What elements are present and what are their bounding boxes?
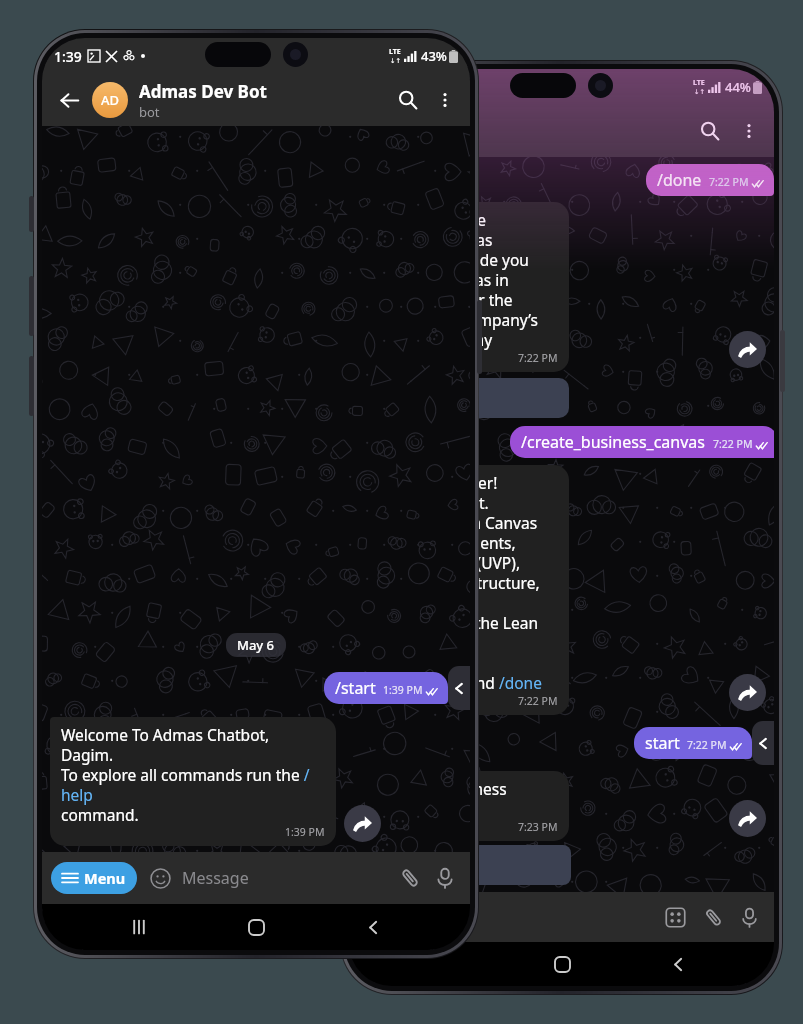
staticText: dmas Dev Bot	[349, 111, 466, 134]
staticText: bot	[139, 103, 160, 121]
staticText: 7:22 PM	[687, 738, 727, 752]
button[interactable]: Home	[236, 907, 276, 947]
button[interactable]: Recents	[425, 944, 465, 984]
button[interactable]: Forward	[729, 800, 766, 837]
staticText: Cancel	[361, 388, 411, 409]
button[interactable]: Voice message	[429, 862, 461, 894]
staticText: 7:22 PM	[518, 351, 558, 365]
button[interactable]: Back	[658, 944, 698, 984]
staticText: ↓↑	[694, 88, 705, 96]
staticText: 43%	[421, 47, 447, 65]
staticText: 7:22 PM	[709, 175, 749, 189]
staticText: Cancel	[361, 855, 411, 876]
button[interactable]: Cancel	[349, 378, 569, 418]
button[interactable]: Voice message	[734, 902, 764, 932]
staticText: MAS Business Planner! r Lean Canvas expe…	[349, 472, 542, 694]
button[interactable]: More options	[734, 116, 764, 146]
button[interactable]: Search	[692, 113, 728, 149]
staticText: Admas Dev Bot	[139, 80, 267, 103]
staticText: /start	[335, 677, 376, 699]
staticText: Message	[182, 867, 249, 889]
button[interactable]: start	[634, 727, 752, 759]
button[interactable]: Back	[52, 83, 86, 117]
staticText: 1:39 PM	[285, 825, 325, 839]
staticText: 7:22 PM	[518, 694, 558, 708]
staticText: by answering all nine ed to the Lean Can…	[349, 209, 538, 351]
staticText: 7:22 PM	[713, 437, 753, 451]
staticText: 1:39	[54, 47, 82, 66]
button[interactable]: /done	[646, 164, 774, 196]
staticText: LTE	[693, 78, 705, 88]
staticText: LTE	[389, 47, 401, 57]
staticText: /done	[657, 169, 702, 191]
button[interactable]: Cancel	[349, 845, 571, 885]
button[interactable]: May 6	[226, 633, 286, 657]
staticText: start	[645, 732, 680, 754]
staticText: /create_business_canvas	[521, 431, 706, 453]
button[interactable]: pany’s name & business my guidance.	[349, 771, 569, 841]
staticText: Welcome To Admas Chatbot, Dagim. To expl…	[61, 724, 325, 825]
button[interactable]: Home	[542, 944, 582, 984]
button[interactable]: Welcome To Admas Chatbot, Dagim. To expl…	[50, 717, 336, 846]
staticText: ↓↑	[390, 57, 401, 65]
staticText: 44%	[725, 78, 751, 96]
button[interactable]: Expand	[448, 666, 470, 710]
button[interactable]: Admas Dev Bot	[139, 80, 390, 121]
staticText: 7:23 PM	[518, 820, 558, 834]
staticText: pany’s name & business my guidance.	[349, 778, 507, 820]
button[interactable]: Attach	[698, 902, 728, 932]
button[interactable]: Forward	[344, 805, 381, 842]
button[interactable]: More options	[430, 85, 460, 115]
button[interactable]: Forward	[729, 331, 766, 368]
button[interactable]: Expand	[752, 721, 774, 765]
staticText: 1:39 PM	[383, 683, 423, 697]
button[interactable]: Emoji	[146, 864, 174, 892]
button[interactable]: AD	[92, 82, 128, 118]
button[interactable]: Bot commands	[660, 902, 690, 932]
staticText: AD	[101, 91, 120, 109]
button[interactable]: MAS Business Planner! r Lean Canvas expe…	[349, 465, 569, 715]
button[interactable]: Menu	[51, 862, 137, 894]
staticText: Message	[364, 906, 431, 928]
button[interactable]: /create_business_canvas	[510, 426, 774, 458]
button[interactable]: Search	[390, 82, 426, 118]
button[interactable]: Message	[364, 906, 660, 928]
staticText: t	[349, 134, 354, 152]
staticText: Menu	[84, 868, 126, 888]
staticText: May 6	[237, 636, 275, 654]
button[interactable]: dmas Dev Bot	[349, 111, 692, 152]
button[interactable]: Attach	[394, 862, 426, 894]
button[interactable]: Forward	[729, 674, 766, 711]
button[interactable]: /start	[324, 672, 448, 704]
button[interactable]: by answering all nine ed to the Lean Can…	[349, 202, 569, 372]
button[interactable]: Message	[182, 867, 394, 889]
button[interactable]: Back	[353, 907, 393, 947]
button[interactable]: Recents	[119, 907, 159, 947]
